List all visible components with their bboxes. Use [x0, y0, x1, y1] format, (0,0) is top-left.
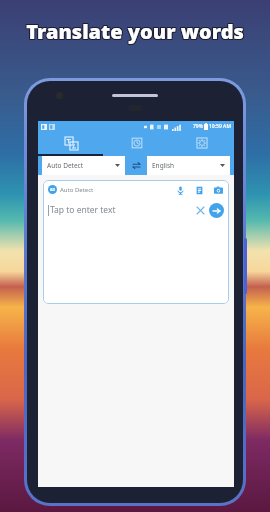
staticText: AD: [50, 187, 55, 192]
button[interactable]: English: [147, 156, 230, 175]
button[interactable]: Auto Detect: [42, 156, 125, 175]
staticText: Translate your words: [27, 19, 245, 46]
staticText: Tap to enter text: [50, 204, 116, 216]
staticText: Translate your words: [26, 18, 244, 45]
button[interactable]: Document: [193, 184, 205, 196]
button[interactable]: History tab: [104, 132, 169, 154]
button[interactable]: Translate: [209, 203, 224, 218]
staticText: Auto Detect: [60, 186, 94, 194]
button[interactable]: Voice input: [174, 184, 186, 196]
staticText: English: [152, 161, 175, 170]
staticText: Translate your words: [27, 18, 245, 45]
staticText: Translate your words: [26, 19, 244, 46]
button[interactable]: Tap to enter text: [48, 199, 224, 221]
button[interactable]: Clear: [194, 204, 206, 216]
staticText: Translate your words: [26, 17, 244, 44]
staticText: 10:59 AM: [209, 123, 231, 130]
staticText: Translate your words: [25, 17, 243, 44]
staticText: Auto Detect: [47, 161, 84, 170]
button[interactable]: Swap languages: [125, 156, 147, 175]
button[interactable]: Translate tab: [38, 132, 104, 154]
staticText: Translate your words: [25, 19, 243, 46]
staticText: Translate your words: [27, 17, 245, 44]
button[interactable]: Settings tab: [169, 132, 234, 154]
staticText: 79%: [193, 123, 203, 130]
button[interactable]: Camera: [212, 184, 224, 196]
staticText: Translate your words: [25, 18, 243, 45]
